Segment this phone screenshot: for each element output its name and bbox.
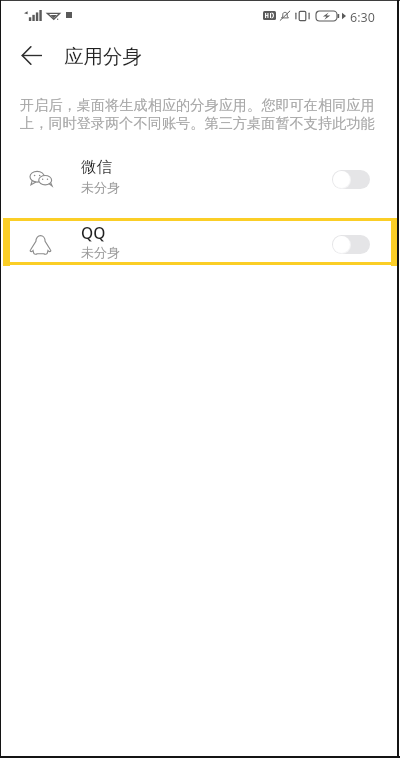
button[interactable]: 微信 [0, 145, 400, 210]
button[interactable]: Back [16, 40, 47, 71]
staticText: 开启后，桌面将生成相应的分身应用。您即可在相同应用上，同时登录两个不同账号。第三… [20, 96, 376, 132]
staticText: 6:30 [350, 9, 375, 26]
staticText: 微信 [81, 157, 112, 177]
button[interactable]: Toggle app twin [332, 170, 370, 189]
button[interactable]: QQ [0, 210, 400, 275]
staticText: 未分身 [81, 244, 120, 260]
staticText: 应用分身 [64, 44, 142, 69]
staticText: QQ [81, 222, 106, 243]
staticText: 未分身 [81, 179, 120, 195]
button[interactable]: Toggle app twin [332, 235, 370, 254]
